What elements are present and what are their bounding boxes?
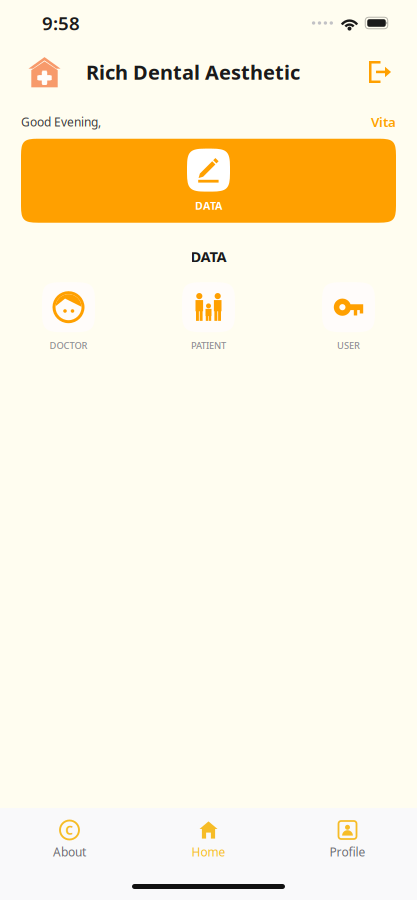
staticText: Home [191, 844, 225, 860]
button[interactable]: DATA [21, 139, 396, 223]
staticText: DATA [195, 199, 222, 213]
staticText: C [65, 822, 73, 838]
button[interactable]: C [0, 820, 139, 866]
staticText: DOCTOR [49, 339, 87, 352]
button[interactable]: Home [139, 820, 278, 866]
button[interactable]: DOCTOR [42, 282, 95, 352]
button[interactable]: PATIENT [182, 282, 235, 352]
staticText: PATIENT [191, 339, 226, 352]
button[interactable]: Profile [278, 820, 417, 866]
staticText: Vita [371, 113, 396, 131]
staticText: Rich Dental Aesthetic [86, 59, 300, 85]
staticText: Profile [329, 844, 365, 860]
staticText: 9:58 [42, 11, 80, 35]
staticText: USER [337, 339, 360, 352]
button[interactable]: USER [322, 282, 375, 352]
staticText: Good Evening, [21, 114, 101, 130]
staticText: DATA [190, 247, 226, 266]
staticText: About [53, 844, 86, 860]
button[interactable]: Log out [365, 57, 395, 87]
